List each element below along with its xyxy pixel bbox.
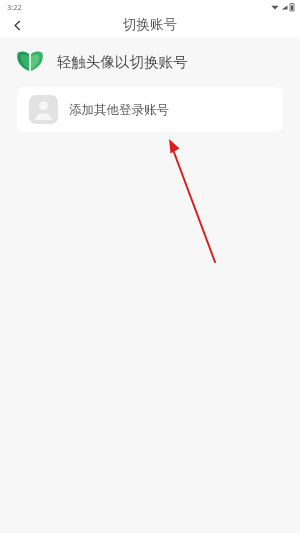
- staticText: 3:22: [7, 2, 22, 12]
- staticText: 轻触头像以切换账号: [57, 53, 188, 71]
- staticText: 添加其他登录账号: [69, 102, 169, 118]
- staticText: 切换账号: [0, 16, 300, 33]
- button[interactable]: Back: [0, 8, 34, 42]
- button[interactable]: 添加其他登录账号: [17, 87, 283, 132]
